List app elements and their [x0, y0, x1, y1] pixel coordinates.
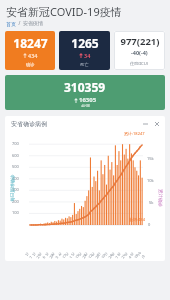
staticText: 9/4: [123, 251, 133, 259]
staticText: -40(-4): [131, 49, 148, 56]
staticText: 0: [148, 222, 151, 227]
staticText: 2/7: [24, 251, 34, 259]
staticText: 1265: [71, 35, 99, 51]
staticText: 累计:18247: [124, 131, 145, 136]
staticText: 9/18: [129, 251, 139, 259]
staticText: 400: [12, 176, 19, 181]
staticText: 310359: [64, 79, 106, 95]
staticText: 34: [84, 52, 91, 59]
staticText: 3/20: [44, 251, 54, 259]
staticText: 5/15: [70, 251, 80, 259]
button[interactable]: Close: [151, 118, 162, 129]
staticText: 5/1: [64, 251, 74, 259]
staticText: 每日新增确诊: [9, 174, 15, 201]
staticText: 600: [12, 153, 19, 158]
button[interactable]: 18247: [5, 31, 55, 70]
staticText: 安省新冠COVID-19疫情: [6, 4, 122, 19]
staticText: 300: [12, 187, 19, 192]
staticText: 15k: [147, 156, 154, 161]
staticText: 200: [12, 199, 19, 204]
staticText: 500: [12, 164, 19, 169]
staticText: 10/2: [136, 251, 146, 259]
staticText: / 安省疫情: [16, 20, 44, 27]
staticText: 6/12: [83, 251, 93, 259]
staticText: 7/10: [96, 251, 106, 259]
staticText: 8/7: [110, 251, 120, 259]
staticText: 5k: [149, 200, 154, 205]
staticText: 新增:434: [129, 217, 145, 222]
staticText: 2/21: [31, 251, 41, 259]
staticText: 10k: [147, 178, 154, 183]
staticText: 3/6: [37, 251, 47, 259]
button[interactable]: 首页: [6, 21, 16, 27]
staticText: 434: [28, 52, 38, 59]
staticText: 5/29: [77, 251, 87, 259]
staticText: 4/3: [50, 251, 60, 259]
staticText: 977(221): [120, 35, 160, 48]
staticText: 100: [12, 210, 19, 215]
staticText: 16305: [79, 96, 97, 104]
staticText: 首页: [6, 21, 16, 27]
staticText: 死亡: [80, 62, 89, 67]
staticText: 检测: [81, 104, 90, 107]
staticText: 18247: [13, 35, 48, 51]
staticText: 7/24: [103, 251, 113, 259]
staticText: 累计确诊: [157, 189, 163, 207]
staticText: 4/17: [57, 251, 67, 259]
button[interactable]: 977(221): [114, 31, 165, 70]
staticText: 8/21: [116, 251, 126, 259]
staticText: 住院(ICU): [130, 61, 149, 67]
staticText: 安省确诊病例: [11, 120, 47, 128]
staticText: 确诊: [26, 62, 35, 67]
button[interactable]: 1265: [59, 31, 110, 70]
staticText: 700: [12, 141, 19, 146]
button[interactable]: 310359: [5, 75, 165, 110]
staticText: 6/26: [90, 251, 100, 259]
button[interactable]: Minimize: [140, 118, 151, 129]
